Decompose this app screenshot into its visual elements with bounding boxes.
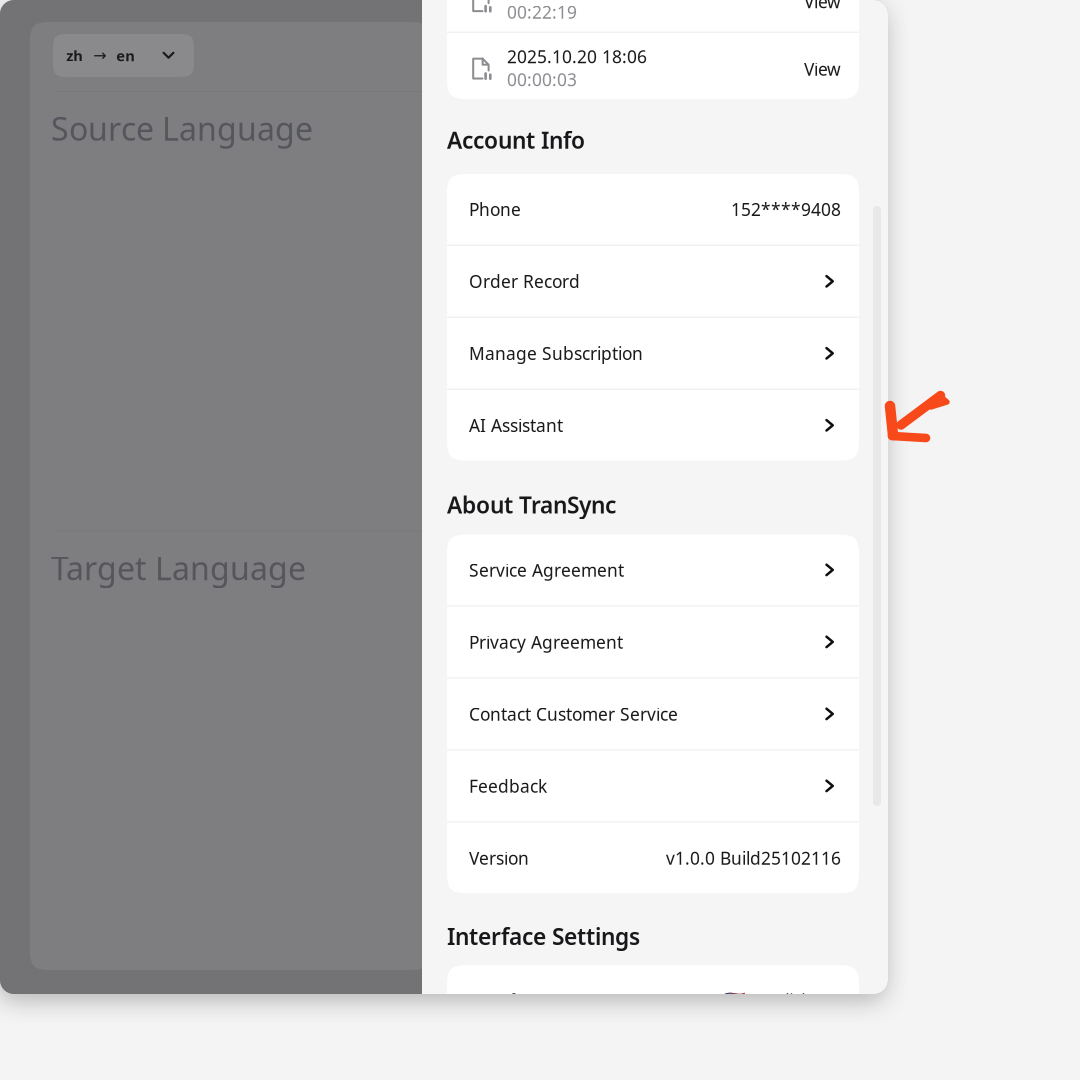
staticText: Manage Subscription xyxy=(469,342,643,365)
staticText: View xyxy=(804,0,841,13)
button[interactable]: Contact Customer Service xyxy=(447,679,859,749)
staticText: Account Info xyxy=(447,125,585,155)
staticText: Privacy Agreement xyxy=(469,630,623,653)
staticText: 2025.10.20 18:06 xyxy=(507,45,647,68)
button[interactable]: Order Record xyxy=(447,246,859,317)
staticText: → xyxy=(93,46,106,65)
button[interactable]: zh xyxy=(53,34,194,77)
staticText: About TranSync xyxy=(447,489,616,520)
staticText: Target Language xyxy=(51,546,306,589)
button[interactable]: Interface Language xyxy=(447,965,859,1036)
staticText: 152****9408 xyxy=(731,198,841,221)
staticText: Version xyxy=(469,846,529,869)
staticText: Phone xyxy=(469,198,521,221)
button[interactable]: Service Agreement xyxy=(447,535,859,605)
button[interactable]: Feedback xyxy=(447,751,859,821)
button[interactable]: Privacy Agreement xyxy=(447,607,859,677)
button[interactable]: 2025.10.20 18:06 xyxy=(447,33,859,99)
staticText: v1.0.0 Build25102116 xyxy=(666,846,841,869)
staticText: zh xyxy=(66,46,83,65)
button[interactable]: 2025.10.20 11:40 xyxy=(447,0,859,32)
staticText: English xyxy=(753,989,812,1012)
button[interactable]: AI Assistant xyxy=(447,390,859,461)
staticText: Interface Language xyxy=(469,989,631,1012)
staticText: 00:00:03 xyxy=(507,68,577,91)
button[interactable]: Manage Subscription xyxy=(447,318,859,389)
staticText: View xyxy=(804,57,841,80)
staticText: Source Language xyxy=(51,107,313,149)
staticText: Feedback xyxy=(469,774,547,797)
staticText: Interface Settings xyxy=(447,921,640,951)
staticText: 00:22:19 xyxy=(507,1,577,24)
staticText: Service Agreement xyxy=(469,558,624,581)
staticText: en xyxy=(116,46,135,65)
staticText: Contact Customer Service xyxy=(469,702,678,725)
staticText: Order Record xyxy=(469,270,580,293)
staticText: 🇺🇸 xyxy=(724,991,746,1010)
staticText: AI Assistant xyxy=(469,414,563,437)
